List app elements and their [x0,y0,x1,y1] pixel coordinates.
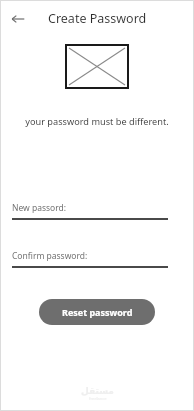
button[interactable]: Reset password [39,299,155,325]
staticText: freelance [89,396,107,401]
button[interactable]: Back [6,7,30,31]
button[interactable]: Confirm password: [12,250,182,268]
staticText: Reset password [62,306,133,318]
staticText: مستقل [81,386,114,396]
staticText: Confirm password: [12,250,88,262]
staticText: New passord: [12,202,67,214]
button[interactable]: New passord: [12,202,182,220]
staticText: your password must be different. [8,115,186,128]
staticText: Create Password [48,10,147,27]
